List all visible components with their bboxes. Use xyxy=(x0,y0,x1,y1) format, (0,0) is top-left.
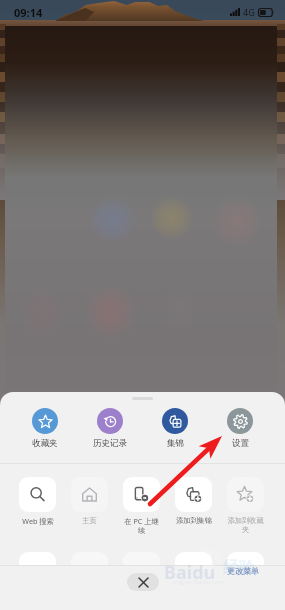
staticText: jingyan.baidu.com xyxy=(172,578,224,586)
button[interactable]: Close menu xyxy=(127,573,159,591)
staticText: 经验 xyxy=(223,558,255,578)
button[interactable]: 集锦 xyxy=(146,408,204,449)
button[interactable]: 在 PC 上继续 xyxy=(123,477,160,535)
button[interactable] xyxy=(175,552,212,565)
staticText: 集锦 xyxy=(167,438,184,449)
button[interactable]: Web 搜索 xyxy=(19,477,56,526)
button[interactable]: 设置 xyxy=(211,408,269,449)
button[interactable]: 添加到收藏夹 xyxy=(227,477,264,534)
staticText: 收藏夹 xyxy=(32,438,58,449)
staticText: 添加到收藏夹 xyxy=(227,516,264,534)
staticText: 设置 xyxy=(232,438,249,449)
staticText: 09:14 xyxy=(14,5,43,20)
button[interactable]: 收藏夹 xyxy=(16,408,74,449)
button[interactable]: 添加到集锦 xyxy=(175,477,212,525)
staticText: 主页 xyxy=(82,516,97,525)
staticText: 更改菜单 xyxy=(227,566,259,576)
staticText: Web 搜索 xyxy=(22,516,54,526)
button[interactable]: 历史记录 xyxy=(81,408,139,449)
button[interactable]: 主页 xyxy=(71,477,108,525)
staticText: 在 PC 上继续 xyxy=(123,516,160,535)
staticText: 添加到集锦 xyxy=(176,516,212,525)
button[interactable] xyxy=(227,552,264,565)
staticText: 4G xyxy=(243,6,255,18)
button[interactable] xyxy=(19,552,56,565)
staticText: Baidu xyxy=(164,560,216,585)
staticText: 历史记录 xyxy=(93,438,127,449)
